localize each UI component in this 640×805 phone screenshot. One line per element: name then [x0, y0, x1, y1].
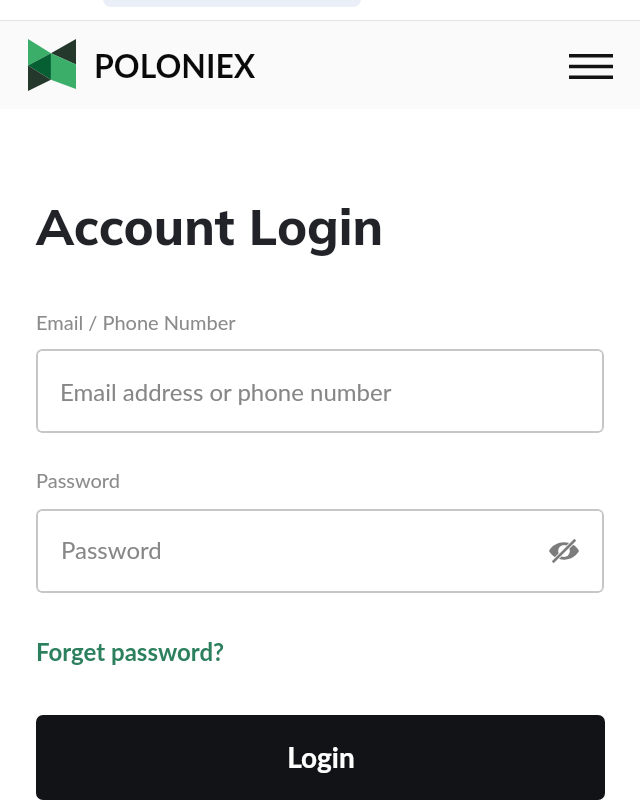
staticText: Email address or phone number — [60, 377, 392, 406]
staticText: POLONIEX — [94, 46, 256, 84]
button[interactable]: Email address or phone number — [36, 349, 604, 433]
staticText: Login — [287, 740, 355, 774]
button[interactable]: Login — [36, 715, 605, 800]
staticText: Email / Phone Number — [36, 310, 236, 334]
button[interactable]: Forget password? — [36, 637, 225, 666]
staticText: Password — [36, 468, 120, 492]
button[interactable]: Password — [36, 509, 604, 593]
button[interactable]: Menu — [553, 30, 629, 102]
staticText: Forget password? — [36, 637, 225, 666]
staticText: Account Login — [36, 195, 384, 258]
button[interactable]: Show password — [541, 528, 587, 574]
staticText: Password — [61, 535, 162, 564]
